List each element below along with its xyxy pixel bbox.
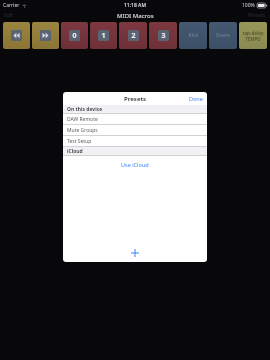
button[interactable]: Edit: [0, 11, 17, 20]
staticText: Presets: [124, 95, 147, 103]
button[interactable]: Presets: [244, 11, 270, 20]
staticText: DAW Remote: [67, 116, 98, 123]
staticText: 1: [101, 31, 106, 41]
button[interactable]: 1: [90, 22, 117, 49]
staticText: 0: [72, 31, 77, 41]
button[interactable]: Rewind: [3, 22, 30, 49]
button[interactable]: Done: [185, 93, 207, 104]
staticText: 3: [161, 31, 166, 41]
staticText: 2: [131, 31, 136, 41]
button[interactable]: 0: [61, 22, 88, 49]
staticText: Carrier: [3, 2, 20, 9]
staticText: Mute Groups: [67, 127, 98, 134]
staticText: Use iCloud: [121, 161, 149, 168]
button[interactable]: Fast forward: [32, 22, 59, 49]
staticText: 11:18 AM: [124, 2, 146, 9]
staticText: Test Setup: [67, 138, 92, 145]
button[interactable]: Mute Groups: [63, 125, 207, 136]
button[interactable]: 2: [119, 22, 147, 49]
staticText: MIDI Macros: [117, 12, 154, 20]
button[interactable]: Use iCloud: [115, 159, 155, 170]
button[interactable]: 3: [149, 22, 177, 49]
staticText: Kick: [188, 32, 199, 39]
button[interactable]: Add preset: [128, 246, 142, 260]
staticText: Edit: [4, 12, 13, 19]
button[interactable]: DAW Remote: [63, 114, 207, 125]
staticText: Done: [189, 95, 203, 102]
button[interactable]: tap-delay TEMPO: [239, 22, 267, 49]
button[interactable]: Kick: [179, 22, 207, 49]
staticText: Presets: [248, 12, 266, 19]
staticText: On this device: [67, 106, 103, 113]
staticText: tap-delay TEMPO: [242, 30, 264, 42]
staticText: Snare: [216, 32, 230, 39]
staticText: 100%: [242, 2, 255, 9]
button[interactable]: Test Setup: [63, 136, 207, 147]
staticText: iCloud: [67, 148, 83, 155]
button[interactable]: Snare: [209, 22, 237, 49]
